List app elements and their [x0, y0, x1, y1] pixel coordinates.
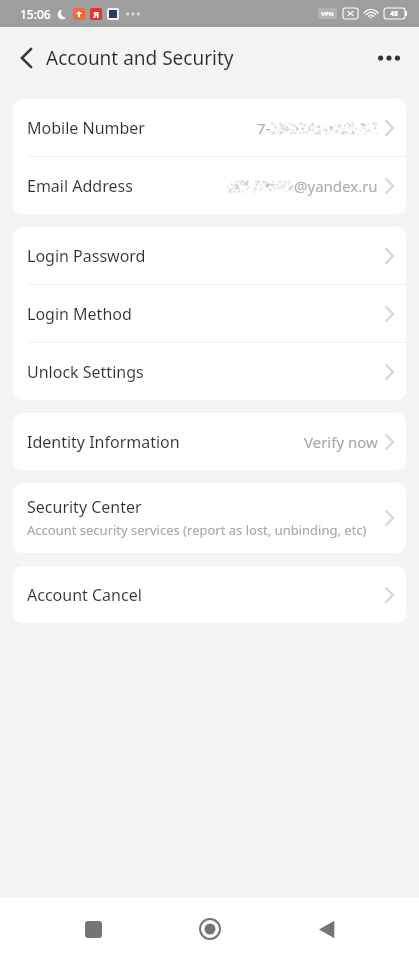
staticText: Email Address — [27, 175, 133, 197]
staticText: Identity Information — [27, 431, 180, 453]
staticText: Mobile Number — [27, 117, 145, 139]
button[interactable]: Home — [187, 906, 233, 952]
button[interactable]: Recent apps — [70, 906, 116, 952]
button[interactable]: Identity Information — [13, 413, 406, 470]
staticText: VPN — [321, 10, 334, 18]
staticText: @yandex.ru — [294, 176, 378, 196]
staticText: Я — [93, 8, 100, 20]
button[interactable]: Security Center — [13, 483, 406, 553]
staticText: 7- — [257, 118, 271, 138]
staticText: Account security services (report as los… — [27, 521, 367, 539]
staticText: Login Method — [27, 303, 132, 325]
button[interactable]: Login Method — [13, 285, 406, 342]
button[interactable]: Back — [6, 38, 46, 78]
staticText: 15:06 — [20, 6, 51, 22]
button[interactable]: Account Cancel — [13, 566, 406, 623]
staticText: Login Password — [27, 245, 146, 267]
staticText: Security Center — [27, 496, 142, 518]
button[interactable]: Unlock Settings — [13, 343, 406, 400]
button[interactable]: Back — [303, 906, 349, 952]
button[interactable]: Email Address — [13, 157, 406, 214]
staticText: 48 — [390, 9, 399, 19]
button[interactable]: Login Password — [13, 227, 406, 284]
button[interactable]: More options — [367, 36, 411, 80]
staticText: Account Cancel — [27, 584, 142, 606]
staticText: Verify now — [304, 432, 378, 452]
button[interactable]: Mobile Number — [13, 99, 406, 156]
staticText: Unlock Settings — [27, 361, 144, 383]
staticText: Account and Security — [46, 45, 234, 71]
